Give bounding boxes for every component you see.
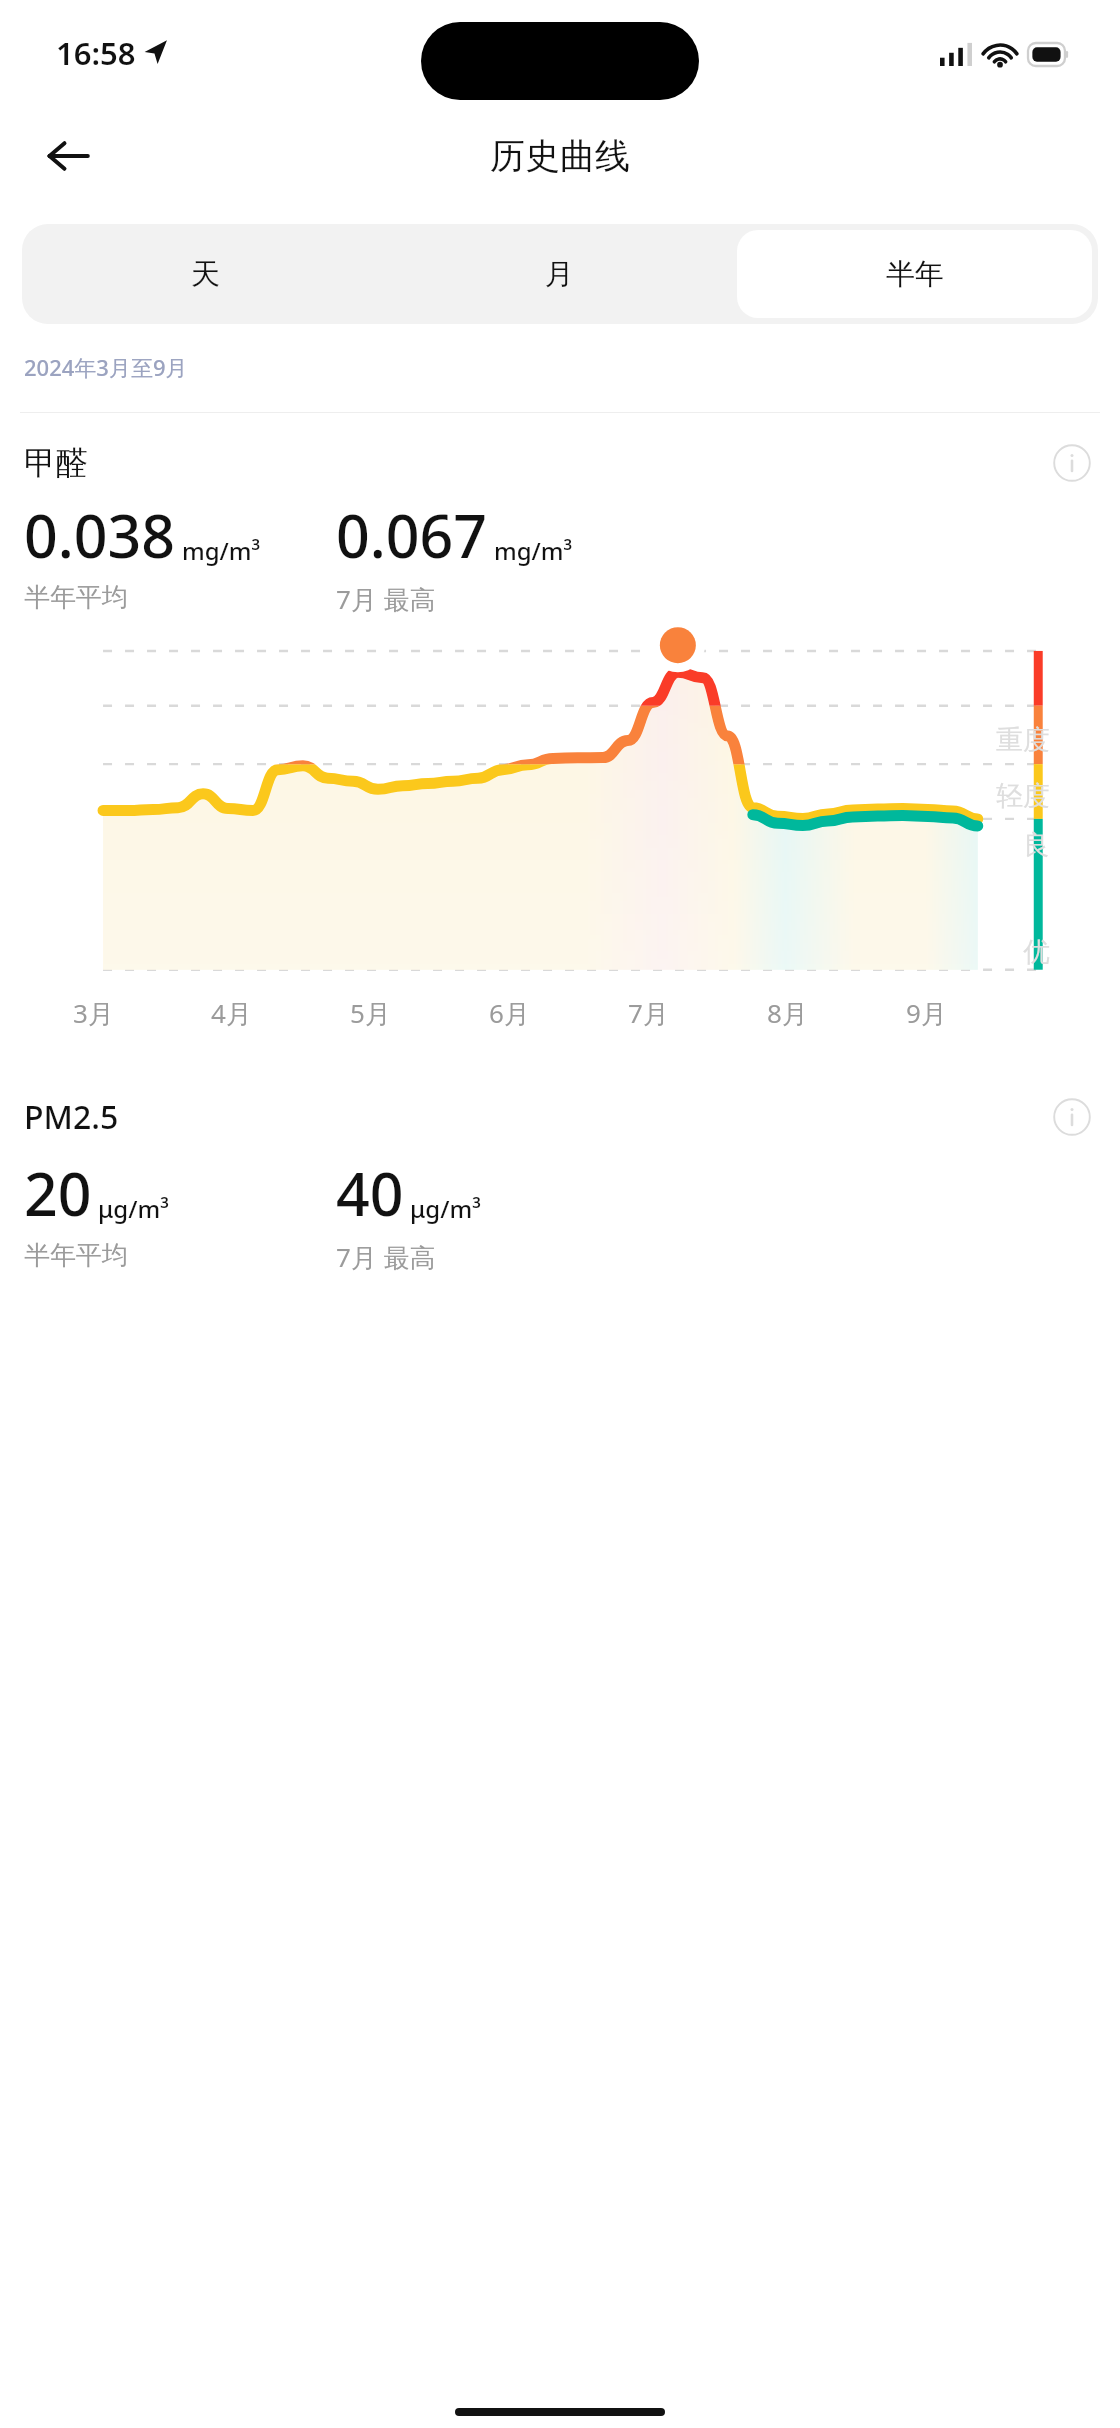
staticText: 历史曲线: [490, 134, 630, 178]
staticText: 7月 最高: [336, 1239, 436, 1275]
staticText: 2024年3月至9月: [24, 352, 188, 382]
staticText: 8月: [767, 995, 808, 1031]
staticText: 0.038: [24, 495, 176, 575]
staticText: PM2.5: [24, 1095, 119, 1139]
staticText: 7月: [628, 995, 669, 1031]
button[interactable]: 天: [28, 230, 382, 318]
staticText: 40: [336, 1153, 404, 1233]
staticText: 3月: [73, 995, 114, 1031]
staticText: 月: [545, 256, 574, 293]
staticText: 天: [191, 256, 220, 293]
staticText: mg/m³: [182, 534, 261, 567]
staticText: μg/m³: [98, 1192, 169, 1225]
staticText: 16:58: [56, 32, 136, 74]
staticText: 6月: [489, 995, 530, 1031]
staticText: 7月 最高: [336, 581, 436, 617]
staticText: 5月: [350, 995, 391, 1031]
staticText: 重度: [996, 723, 1050, 757]
button[interactable]: Info: [1048, 1093, 1096, 1141]
staticText: 优: [1023, 935, 1050, 969]
staticText: 半年: [886, 256, 944, 293]
staticText: 甲醛: [24, 443, 88, 483]
staticText: 良: [1023, 828, 1050, 862]
staticText: 0.067: [336, 495, 488, 575]
staticText: 20: [24, 1153, 92, 1233]
button[interactable]: 月: [382, 230, 737, 318]
staticText: 半年平均: [24, 581, 128, 614]
button[interactable]: Back: [32, 120, 104, 192]
staticText: 轻度: [996, 779, 1050, 813]
button[interactable]: Info: [1048, 439, 1096, 487]
staticText: mg/m³: [494, 534, 573, 567]
staticText: 4月: [211, 995, 252, 1031]
button[interactable]: 半年: [737, 230, 1092, 318]
staticText: 半年平均: [24, 1239, 128, 1272]
staticText: μg/m³: [410, 1192, 481, 1225]
staticText: 9月: [906, 995, 947, 1031]
